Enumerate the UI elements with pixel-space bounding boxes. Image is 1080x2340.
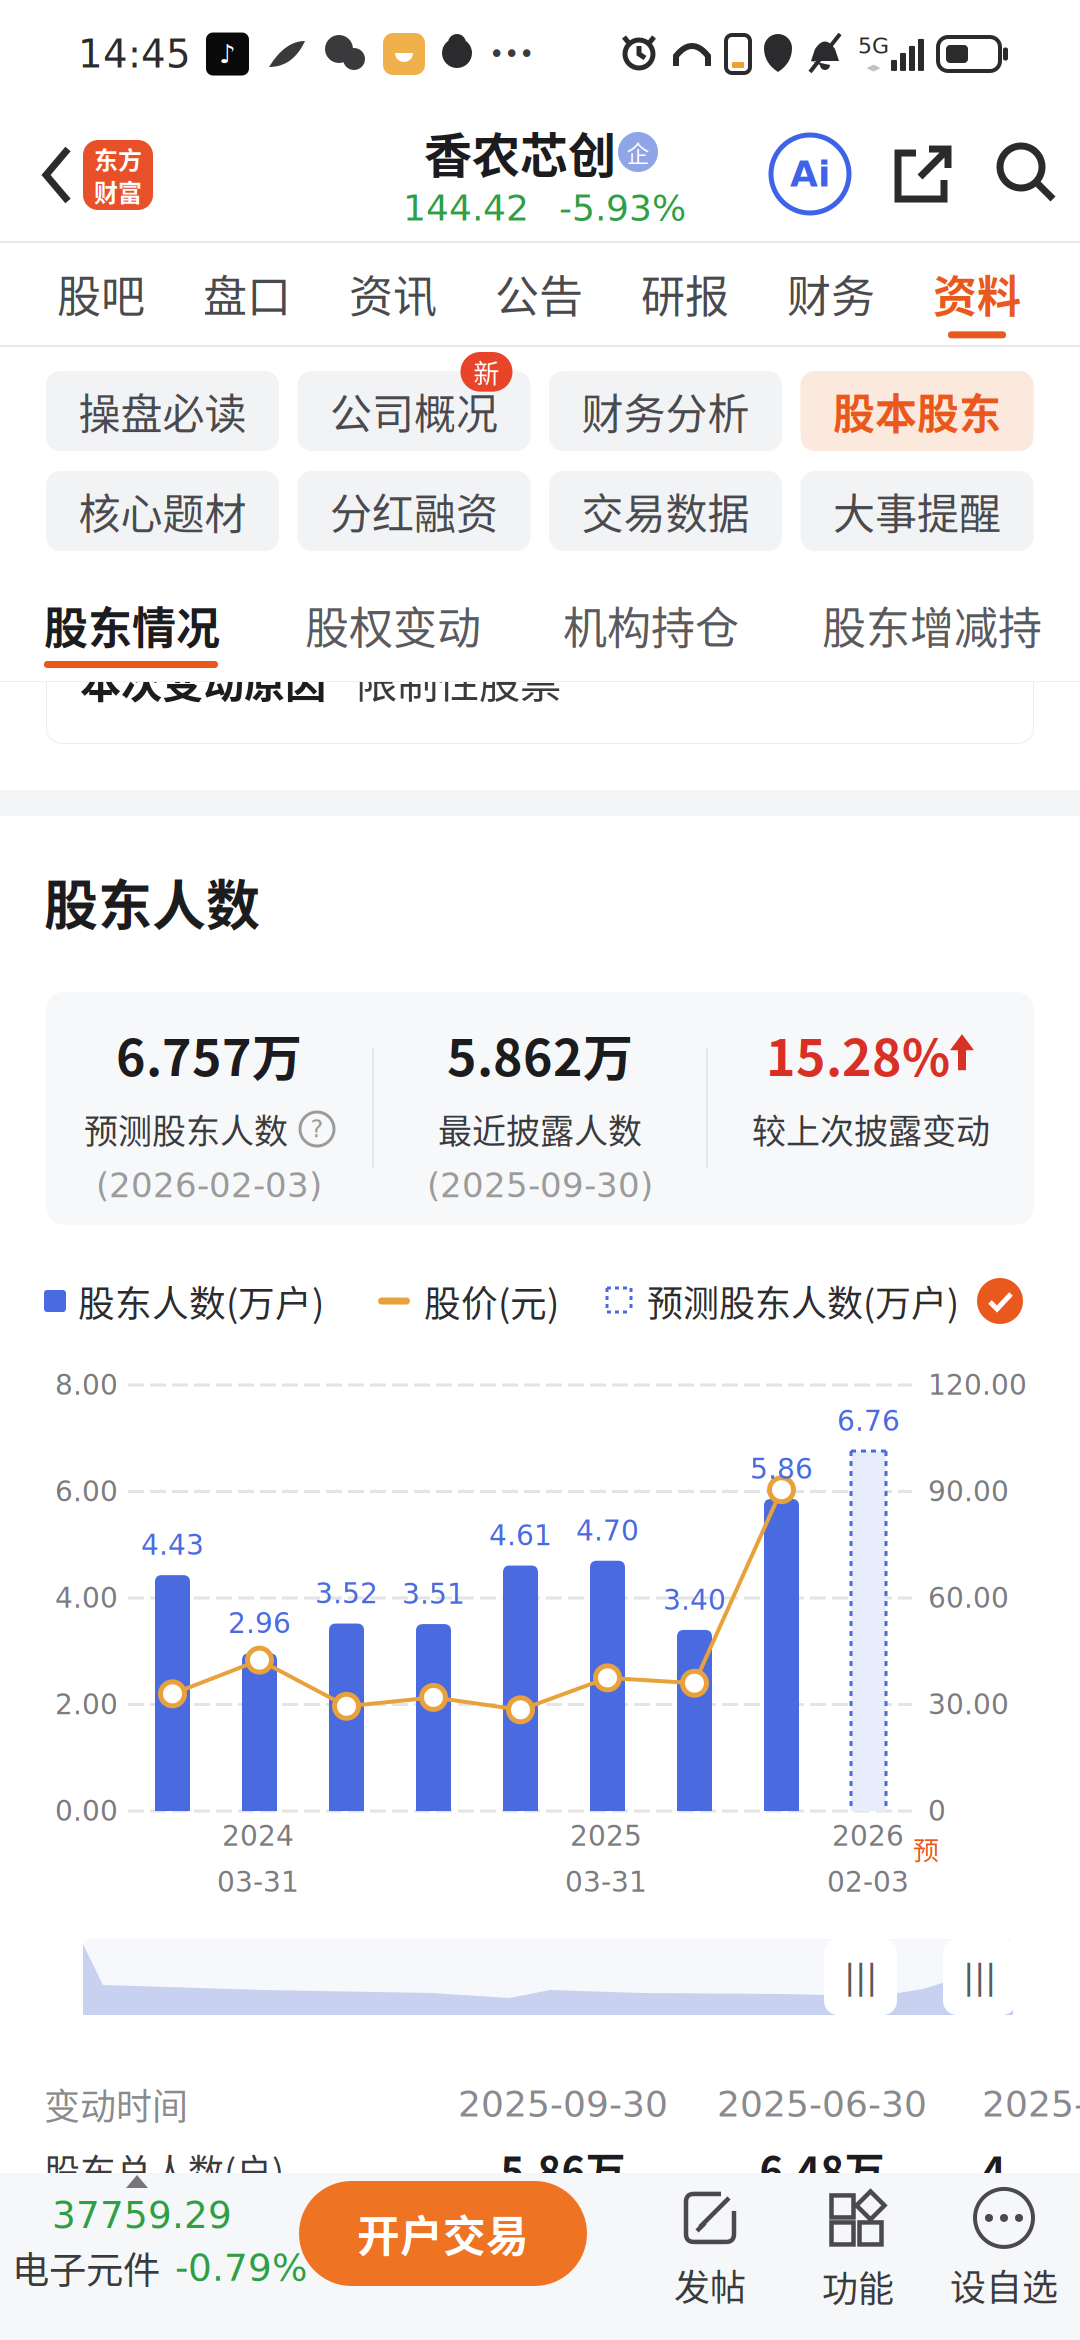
button[interactable]: 股东增减持 xyxy=(822,596,1080,654)
staticText: 4 xyxy=(982,2140,1006,2198)
button[interactable]: 操盘必读 xyxy=(46,371,279,451)
staticText: 大事提醒 xyxy=(833,481,1001,541)
button[interactable]: Back xyxy=(34,141,80,209)
staticText: 6.757万 xyxy=(116,1018,302,1090)
staticText: -0.79% xyxy=(175,2246,307,2289)
button[interactable]: 财务 xyxy=(758,243,904,343)
staticText: 37759.29 xyxy=(52,2193,232,2237)
staticText: 香农芯创 xyxy=(424,117,616,187)
staticText: 股东总人数(户) xyxy=(44,2144,284,2196)
staticText: 机构持仓 xyxy=(563,593,739,657)
button[interactable]: 股吧 xyxy=(28,243,174,343)
button[interactable]: 功能 xyxy=(788,2185,928,2315)
staticText: 2026 xyxy=(832,1820,904,1852)
staticText: 发帖 xyxy=(674,2259,746,2311)
staticText: 15.28% xyxy=(766,1018,950,1090)
button[interactable]: 机构持仓 xyxy=(563,596,863,654)
staticText: (2025-09-30) xyxy=(427,1166,653,1205)
button[interactable]: 资讯 xyxy=(320,243,466,343)
staticText: 新 xyxy=(473,353,499,391)
button[interactable]: Toggle predicted series xyxy=(977,1278,1023,1324)
staticText: 0 xyxy=(928,1795,946,1827)
staticText: 30.00 xyxy=(928,1688,1009,1721)
staticText: ? xyxy=(310,1115,323,1143)
staticText: 6.76 xyxy=(837,1405,900,1437)
staticText: 6.48万 xyxy=(759,2140,884,2198)
button[interactable]: 交易数据 xyxy=(549,471,782,551)
staticText: 03-31 xyxy=(217,1866,299,1898)
staticText: 东方 xyxy=(94,141,142,176)
button[interactable]: 盘口 xyxy=(174,243,320,343)
staticText: 股权变动 xyxy=(305,593,481,657)
button[interactable]: 公司概况 xyxy=(297,371,530,451)
staticText: 5G xyxy=(858,33,889,59)
staticText: 开户交易 xyxy=(357,2203,529,2264)
button[interactable]: 37759.29 xyxy=(2,2189,292,2299)
staticText: 财务分析 xyxy=(581,381,749,441)
staticText: 4.00 xyxy=(55,1582,118,1614)
staticText: 股东人数 xyxy=(44,863,260,941)
button[interactable]: 设自选 xyxy=(934,2185,1074,2315)
staticText: 股东增减持 xyxy=(822,593,1042,657)
button[interactable]: East Money home xyxy=(83,140,153,210)
staticText: 财务 xyxy=(787,262,875,325)
staticText: ||| xyxy=(963,1957,996,1997)
staticText: 8.00 xyxy=(55,1369,118,1401)
button[interactable]: 核心题材 xyxy=(46,471,279,551)
staticText: 研报 xyxy=(641,262,729,325)
staticText: 变动时间 xyxy=(44,2078,188,2130)
staticText: 3.51 xyxy=(402,1578,465,1610)
button[interactable]: 发帖 xyxy=(640,2185,780,2315)
staticText: 2.00 xyxy=(55,1688,118,1721)
staticText: 预 xyxy=(913,1830,939,1868)
staticText: 90.00 xyxy=(928,1475,1009,1508)
button[interactable]: Range end handle xyxy=(943,1939,1016,2015)
staticText: 6.00 xyxy=(55,1475,118,1508)
staticText: 4.61 xyxy=(489,1519,552,1552)
button[interactable]: Range start handle xyxy=(824,1939,897,2015)
staticText: 限制性股票 xyxy=(356,650,561,710)
staticText: 0.00 xyxy=(55,1795,118,1827)
staticText: 5.86 xyxy=(750,1453,813,1485)
staticText: 盘口 xyxy=(203,262,291,325)
staticText: (2026-02-03) xyxy=(96,1166,322,1205)
staticText: ♪ xyxy=(219,39,236,69)
button[interactable]: 公告 xyxy=(466,243,612,343)
staticText: 核心题材 xyxy=(78,481,246,541)
button[interactable]: 开户交易 xyxy=(299,2181,587,2286)
staticText: 资料 xyxy=(933,262,1021,325)
button[interactable]: 财务分析 xyxy=(549,371,782,451)
button[interactable]: 股东情况 xyxy=(44,596,344,654)
button[interactable]: 大事提醒 xyxy=(800,471,1033,551)
staticText: 144.42 xyxy=(403,187,529,229)
staticText: 操盘必读 xyxy=(78,381,246,441)
staticText: 本次变动原因 xyxy=(80,650,326,710)
staticText: 60.00 xyxy=(928,1582,1009,1614)
staticText: 交易数据 xyxy=(581,481,749,541)
button[interactable]: AI assistant xyxy=(771,135,849,213)
button[interactable]: 资料 xyxy=(904,243,1050,343)
staticText: 2025 xyxy=(570,1820,642,1852)
button[interactable]: Share xyxy=(893,142,955,206)
staticText: 股价(元) xyxy=(424,1274,559,1328)
staticText: 最近披露人数 xyxy=(438,1104,642,1154)
staticText: 03-31 xyxy=(565,1866,647,1898)
staticText: 2025-09-30 xyxy=(458,2083,668,2125)
staticText: 14:45 xyxy=(78,31,191,76)
staticText: ||| xyxy=(844,1957,877,1997)
staticText: 较上次披露变动 xyxy=(752,1104,990,1154)
staticText: 2025- xyxy=(982,2083,1080,2125)
button[interactable]: 股本股东 xyxy=(800,371,1033,451)
button[interactable]: Search xyxy=(996,142,1060,206)
staticText: -5.93% xyxy=(559,187,686,229)
staticText: 企 xyxy=(626,136,649,168)
staticText: 2024 xyxy=(222,1820,294,1852)
staticText: 5.86万 xyxy=(500,2140,625,2198)
button[interactable]: 研报 xyxy=(612,243,758,343)
button[interactable]: 分红融资 xyxy=(297,471,530,551)
staticText: 5.862万 xyxy=(447,1018,633,1090)
staticText: 预测股东人数(万户) xyxy=(647,1275,959,1327)
button[interactable]: 股权变动 xyxy=(305,596,605,654)
staticText: 2.96 xyxy=(228,1607,291,1640)
staticText: 2025-06-30 xyxy=(717,2083,927,2125)
